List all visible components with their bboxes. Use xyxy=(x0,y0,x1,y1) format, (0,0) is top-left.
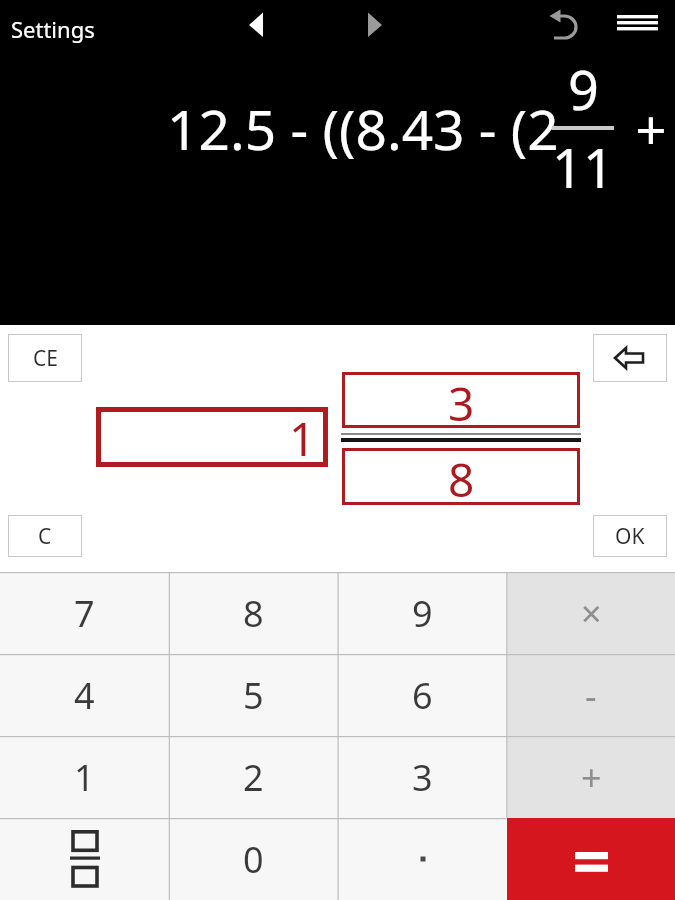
staticText: + xyxy=(621,91,667,166)
staticText: 3 xyxy=(448,372,475,428)
button[interactable]: 3 xyxy=(342,372,580,428)
staticText: 9 xyxy=(568,52,599,126)
button[interactable]: 2 xyxy=(169,736,338,818)
staticText: 8 xyxy=(448,448,475,505)
staticText: × xyxy=(581,589,602,638)
button[interactable]: 8 xyxy=(169,572,338,654)
button[interactable]: OK xyxy=(593,515,667,557)
button[interactable]: - xyxy=(507,654,675,736)
button[interactable]: 9 xyxy=(338,572,507,654)
staticText: 11 xyxy=(552,130,614,204)
button[interactable]: 6 xyxy=(338,654,507,736)
staticText: CE xyxy=(33,344,58,373)
staticText: 3 xyxy=(412,753,433,802)
staticText: + xyxy=(581,753,602,802)
staticText: 7 xyxy=(74,589,95,638)
button[interactable] xyxy=(0,818,169,900)
button[interactable]: 4 xyxy=(0,654,169,736)
staticText: 2 xyxy=(243,753,264,802)
button[interactable]: 5 xyxy=(169,654,338,736)
staticText: OK xyxy=(615,522,645,551)
button[interactable]: 1 xyxy=(96,407,328,467)
button[interactable]: 1 xyxy=(0,736,169,818)
staticText: 5 xyxy=(243,671,264,720)
button[interactable]: 3 xyxy=(338,736,507,818)
staticText: 6 xyxy=(412,671,433,720)
button[interactable]: CE xyxy=(8,334,82,382)
button[interactable]: Settings xyxy=(11,14,95,44)
button[interactable]: × xyxy=(507,572,675,654)
button[interactable]: 0 xyxy=(169,818,338,900)
button[interactable]: + xyxy=(507,736,675,818)
staticText: 12.5 - ((8.43 - (2 xyxy=(167,91,559,166)
staticText: 9 xyxy=(412,589,433,638)
staticText: 1 xyxy=(289,407,316,467)
button[interactable]: C xyxy=(8,515,82,557)
staticText: 4 xyxy=(74,671,95,720)
button[interactable]: 8 xyxy=(342,448,580,505)
staticText: 1 xyxy=(74,753,95,802)
staticText: 8 xyxy=(243,589,264,638)
staticText: 0 xyxy=(243,835,264,884)
button[interactable] xyxy=(593,334,667,382)
button[interactable] xyxy=(338,818,507,900)
button[interactable] xyxy=(507,818,675,900)
button[interactable]: 7 xyxy=(0,572,169,654)
staticText: - xyxy=(585,671,597,720)
staticText: C xyxy=(38,522,52,551)
